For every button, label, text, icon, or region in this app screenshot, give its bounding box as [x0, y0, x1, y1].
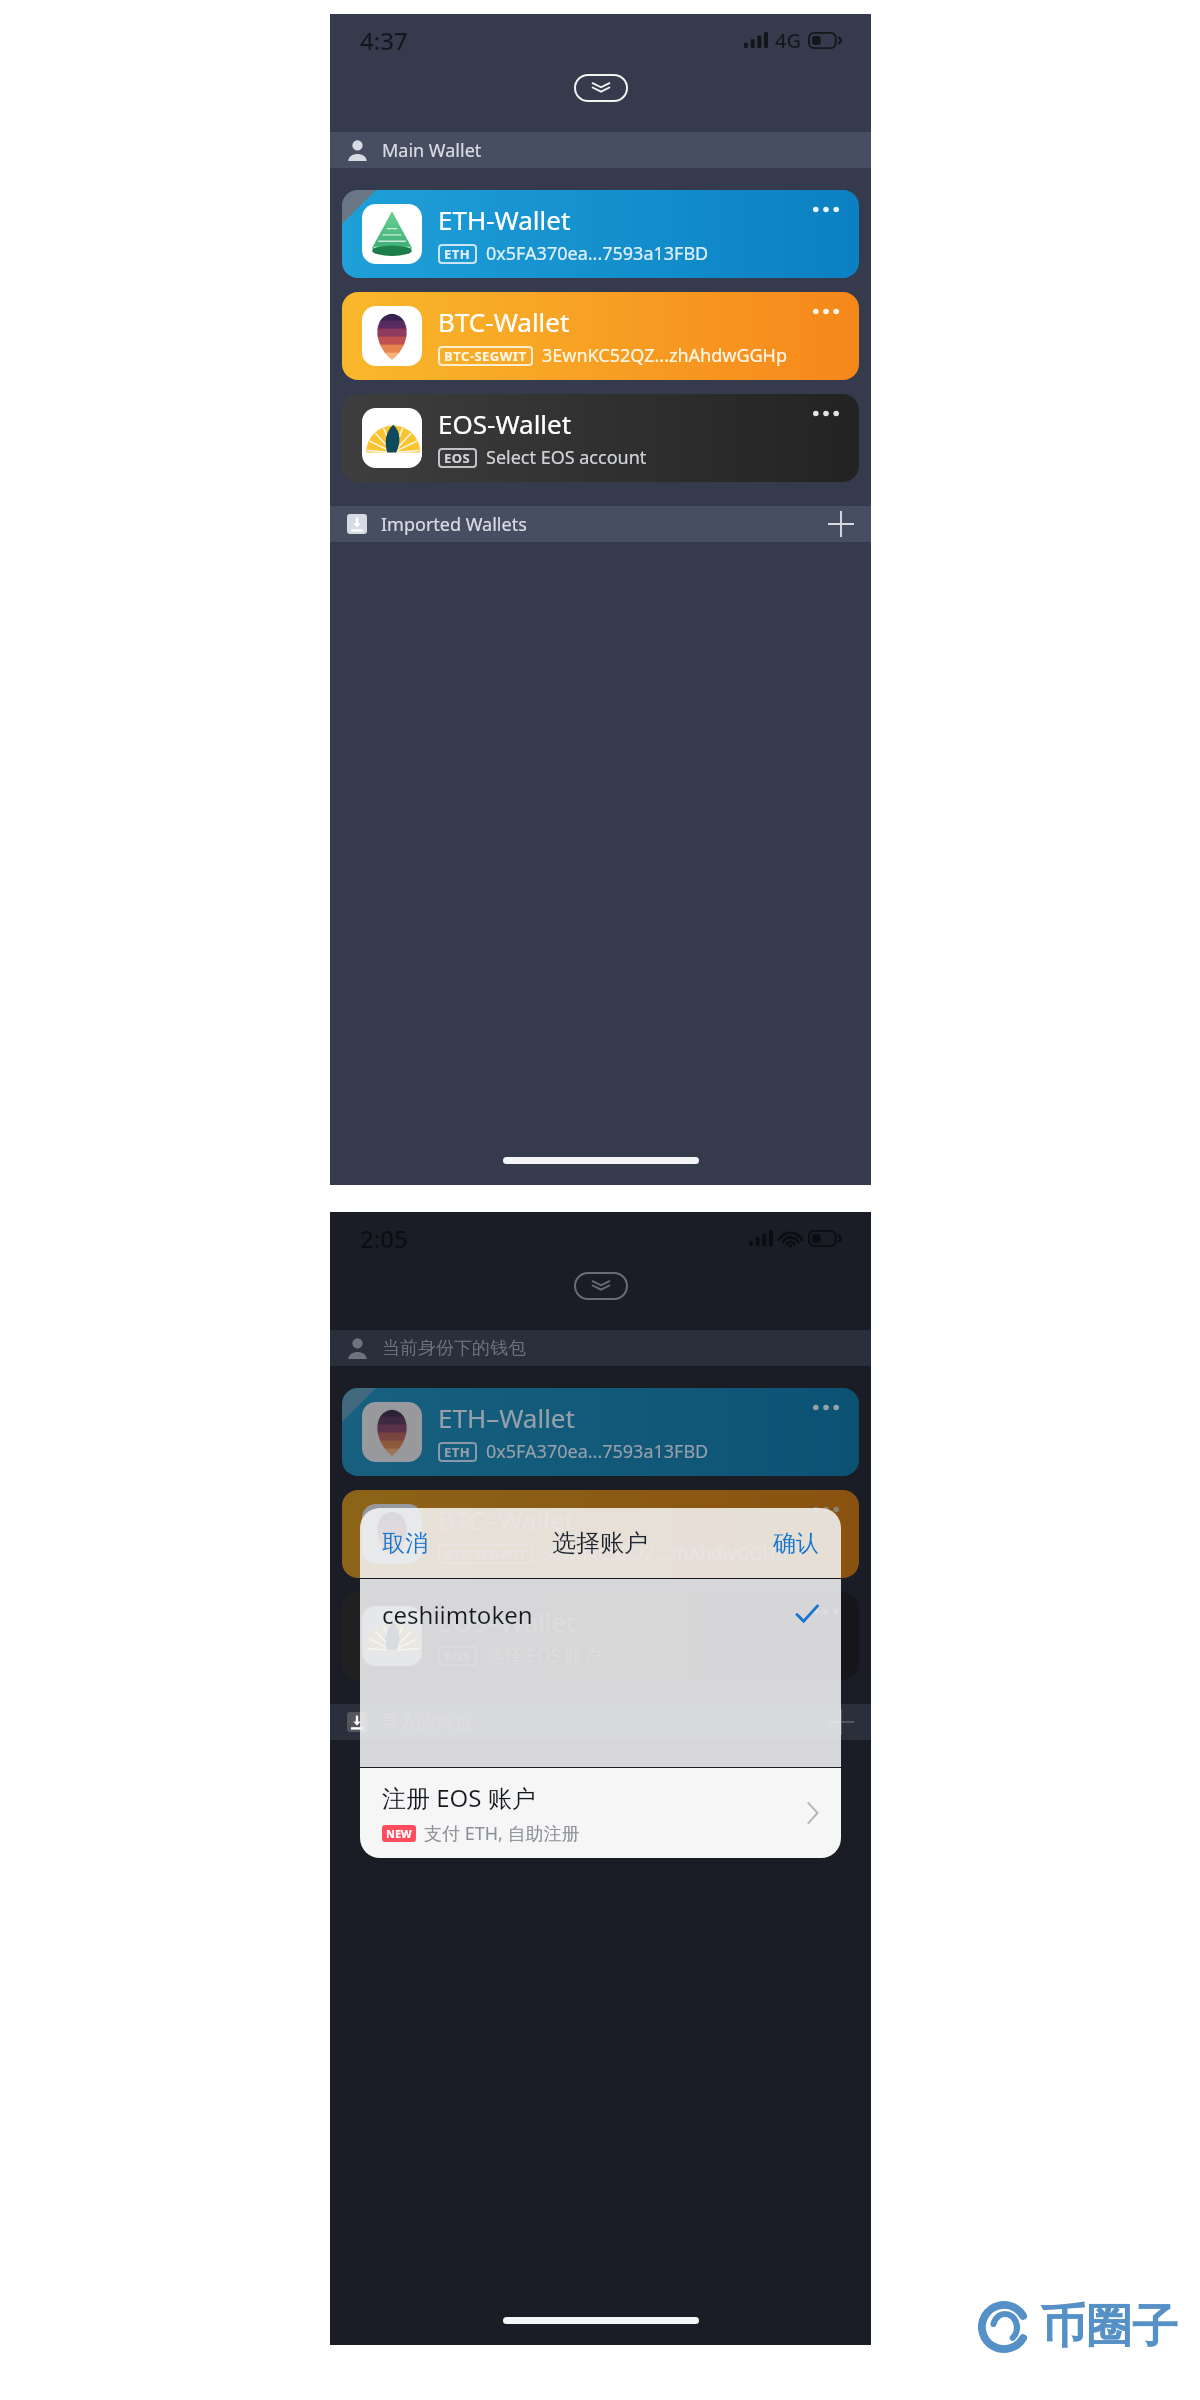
button[interactable]: Add wallet [828, 1709, 854, 1735]
button[interactable]: More options [813, 1608, 839, 1615]
staticText: 2:05 [360, 1222, 408, 1255]
staticText: 选择账户 [552, 1528, 648, 1558]
button[interactable]: EOS-Wallet [342, 394, 859, 482]
staticText: 3EwnKC52QZ...zhAhdwGGHp [542, 343, 788, 368]
button[interactable]: More options [813, 410, 839, 417]
staticText: Main Wallet [382, 138, 482, 163]
staticText: ceshiimtoken [382, 1598, 533, 1631]
button[interactable]: ETH–Wallet [342, 1388, 859, 1476]
staticText: 确认 [773, 1529, 819, 1558]
button[interactable]: More options [813, 206, 839, 213]
staticText: EOS–Wallet [438, 1604, 576, 1639]
staticText: 4G [775, 27, 801, 54]
staticText: ETH [444, 1443, 471, 1461]
button[interactable]: BTC-Wallet [342, 292, 859, 380]
button[interactable]: More options [813, 1506, 839, 1513]
staticText: ETH [444, 245, 471, 263]
button[interactable]: Collapse [574, 74, 628, 102]
staticText: 支付 ETH, 自助注册 [424, 1821, 580, 1846]
staticText: BTC-Wallet [438, 304, 570, 339]
staticText: 0x5FA370ea...7593a13FBD [486, 241, 709, 266]
button[interactable]: ceshiimtoken [360, 1579, 841, 1649]
staticText: BTC-SEGWIT [444, 1545, 527, 1563]
staticText: 当前身份下的钱包 [382, 1337, 526, 1360]
button[interactable]: ETH-Wallet [342, 190, 859, 278]
staticText: 币圈子 [1040, 2298, 1178, 2356]
staticText: 0x5FA370ea...7593a13FBD [486, 1439, 709, 1464]
button[interactable]: Collapse [574, 1272, 628, 1300]
button[interactable]: 注册 EOS 账户 [360, 1768, 841, 1858]
button[interactable]: More options [813, 308, 839, 315]
staticText: EOS [444, 449, 471, 467]
staticText: ETH–Wallet [438, 1400, 575, 1435]
staticText: 注册 EOS 账户 [382, 1781, 536, 1814]
button[interactable]: 确认 [773, 1529, 819, 1558]
button[interactable]: Add wallet [828, 511, 854, 537]
button[interactable]: 取消 [382, 1529, 428, 1558]
staticText: NEW [386, 1826, 412, 1841]
staticText: BTC–Wallet [438, 1502, 574, 1537]
staticText: 4:37 [360, 24, 408, 57]
button[interactable]: More options [813, 1404, 839, 1411]
button[interactable]: BTC–Wallet [342, 1490, 859, 1578]
staticText: Imported Wallets [381, 512, 527, 537]
staticText: BTC-SEGWIT [444, 347, 527, 365]
staticText: EOS-Wallet [438, 406, 572, 441]
staticText: ETH-Wallet [438, 202, 571, 237]
staticText: Select EOS account [486, 445, 647, 470]
button[interactable]: EOS–Wallet [342, 1592, 859, 1680]
staticText: 3EwnKC52QZ...zhAhdwGGHp [542, 1541, 788, 1566]
staticText: 取消 [382, 1529, 428, 1558]
